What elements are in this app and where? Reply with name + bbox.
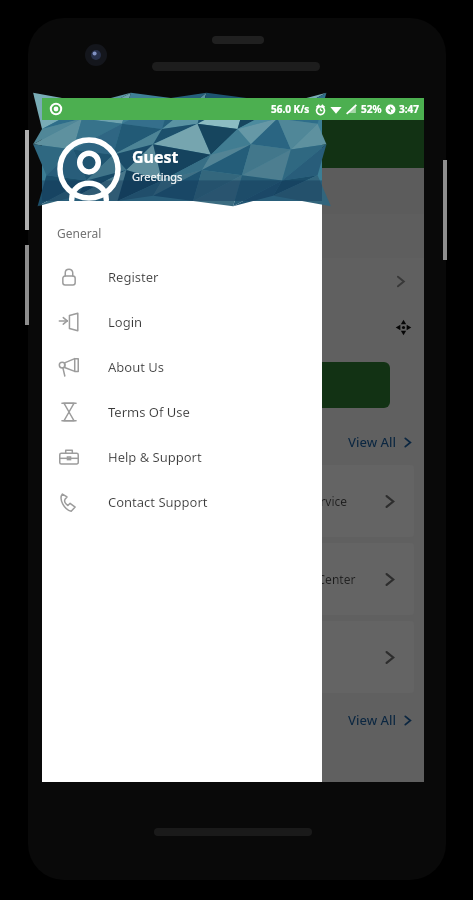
staticText: Service — [307, 493, 348, 509]
button[interactable]: Contact Support — [42, 479, 322, 524]
button[interactable]: About Us — [42, 344, 322, 389]
button[interactable]: View All — [348, 433, 414, 451]
staticText: Register — [108, 268, 159, 286]
button[interactable]: Register — [42, 254, 322, 299]
button[interactable]: View All — [348, 711, 414, 729]
other: Move — [395, 319, 412, 336]
staticText: Greetings — [132, 169, 183, 184]
staticText: View All — [348, 711, 397, 729]
staticText: Contact Support — [108, 493, 208, 511]
staticText: Login — [108, 313, 143, 331]
button[interactable]: Login — [42, 299, 322, 344]
staticText: General — [57, 225, 102, 241]
button[interactable]: Help & Support — [42, 434, 322, 479]
staticText: 3:47 — [399, 102, 419, 116]
staticText: Terms Of Use — [108, 403, 190, 421]
button[interactable]: Move — [42, 304, 424, 350]
staticText: n Center — [307, 571, 356, 587]
staticText: Help & Support — [108, 448, 202, 466]
button[interactable]: n Center — [52, 543, 414, 615]
staticText: View All — [348, 433, 397, 451]
staticText: 56.0 K/s — [271, 102, 310, 116]
button[interactable]: Terms Of Use — [42, 389, 322, 434]
staticText: About Us — [108, 358, 165, 376]
button[interactable] — [60, 362, 390, 408]
button[interactable] — [42, 258, 424, 304]
staticText: Guest — [132, 146, 179, 168]
staticText: 52% — [361, 102, 382, 116]
button[interactable]: Service — [52, 465, 414, 537]
button[interactable] — [52, 621, 414, 693]
